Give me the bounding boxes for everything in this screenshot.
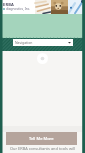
staticText: Tell Me More: [29, 136, 54, 141]
button[interactable]: Tell Me More: [6, 132, 77, 145]
button[interactable]: Navigation: [13, 39, 73, 46]
staticText: Navigation: [15, 40, 33, 45]
staticText: ERBA: [3, 2, 15, 7]
staticText: Our ERBA consultants and tools will: [10, 146, 75, 151]
staticText: diagnostics, Inc.: [6, 7, 31, 11]
